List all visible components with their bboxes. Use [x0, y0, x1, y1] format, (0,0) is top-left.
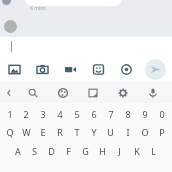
staticText: 2 [23, 108, 29, 120]
staticText: 7 [108, 108, 114, 120]
button[interactable]: S [26, 144, 43, 157]
button[interactable]: Send [145, 59, 166, 80]
button[interactable]: D [43, 144, 60, 157]
button[interactable]: E [34, 125, 51, 138]
button[interactable]: 2 [18, 107, 34, 120]
button[interactable]: K [128, 144, 145, 157]
button[interactable]: Contact avatar [4, 20, 17, 33]
button[interactable]: 5 [68, 107, 85, 120]
staticText: 5 [74, 108, 80, 120]
button[interactable]: A [10, 144, 26, 157]
button[interactable]: 9 [136, 107, 153, 120]
staticText: I [126, 126, 130, 138]
button[interactable]: L [145, 144, 162, 157]
button[interactable]: H [94, 144, 111, 157]
staticText: 4 [57, 108, 63, 120]
staticText: 3 [40, 108, 46, 120]
staticText: W [22, 126, 31, 138]
staticText: F [66, 145, 71, 157]
button[interactable]: Voice input [138, 82, 168, 103]
staticText: U [107, 126, 114, 138]
staticText: Q [6, 126, 14, 138]
button[interactable]: U [102, 125, 119, 138]
button[interactable]: I [119, 125, 136, 138]
button[interactable]: G [77, 144, 94, 157]
button[interactable]: Camera [33, 60, 51, 78]
button[interactable]: R [51, 125, 68, 138]
staticText: S [32, 145, 37, 157]
button[interactable]: Q [2, 125, 18, 138]
button[interactable]: 6 [85, 107, 102, 120]
staticText: 9 [142, 108, 148, 120]
staticText: D [48, 145, 55, 157]
button[interactable]: Video [61, 60, 79, 78]
button[interactable]: Stickers [89, 60, 107, 78]
staticText: A [15, 145, 21, 157]
button[interactable]: Settings [108, 82, 138, 103]
button[interactable]: 8 [119, 107, 136, 120]
button[interactable]: Y [85, 125, 102, 138]
button[interactable]: P [153, 125, 170, 138]
button[interactable] [25, 0, 122, 6]
button[interactable]: W [18, 125, 34, 138]
staticText: J [118, 145, 121, 157]
button[interactable] [0, 37, 172, 56]
staticText: Y [91, 126, 97, 138]
button[interactable]: J [111, 144, 128, 157]
button[interactable]: Gallery [5, 60, 23, 78]
staticText: 6 [91, 108, 97, 120]
button[interactable]: Search [18, 82, 48, 103]
button[interactable]: 7 [102, 107, 119, 120]
staticText: 8 mins [30, 5, 46, 12]
staticText: R [57, 126, 63, 138]
button[interactable]: Back [0, 82, 18, 103]
staticText: E [40, 126, 46, 138]
staticText: P [159, 126, 165, 138]
staticText: 8 [125, 108, 131, 120]
button[interactable]: Location [117, 60, 135, 78]
staticText: G [82, 145, 89, 157]
button[interactable]: 0 [153, 107, 170, 120]
staticText: 0 [159, 108, 165, 120]
staticText: T [74, 126, 80, 138]
staticText: L [151, 145, 156, 157]
button[interactable]: O [136, 125, 153, 138]
button[interactable]: Themes [48, 82, 78, 103]
button[interactable]: T [68, 125, 85, 138]
staticText: O [141, 126, 149, 138]
button[interactable]: 1 [2, 107, 18, 120]
staticText: H [99, 145, 106, 157]
button[interactable]: 3 [34, 107, 51, 120]
staticText: K [134, 145, 140, 157]
staticText: 1 [7, 108, 13, 120]
button[interactable]: Clipboard [78, 82, 108, 103]
button[interactable]: 4 [51, 107, 68, 120]
button[interactable]: F [60, 144, 77, 157]
